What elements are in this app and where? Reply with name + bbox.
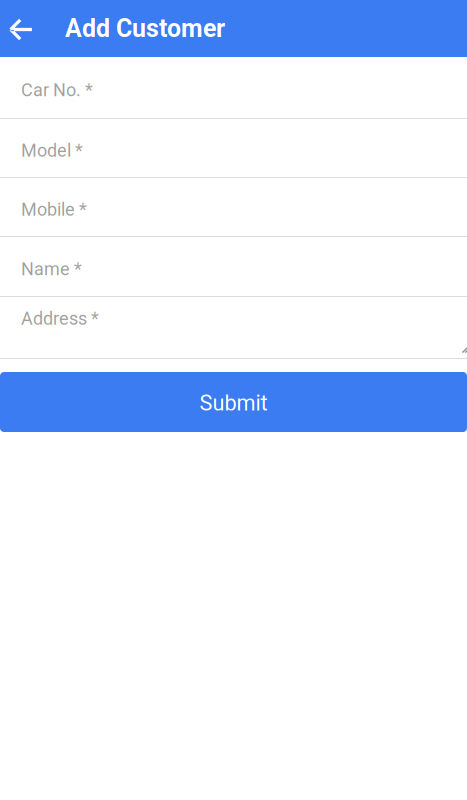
staticText: Submit	[199, 390, 267, 416]
button[interactable]: Back	[0, 0, 48, 57]
staticText: Address *	[21, 308, 99, 329]
staticText: Add Customer	[65, 14, 225, 43]
staticText: Mobile *	[21, 199, 87, 220]
button[interactable]: Car No. *	[0, 57, 467, 119]
button[interactable]: Submit	[0, 372, 467, 432]
staticText: Car No. *	[21, 79, 93, 101]
staticText: Name *	[21, 258, 82, 280]
button[interactable]: Address *	[0, 297, 467, 359]
button[interactable]: Mobile *	[0, 178, 467, 237]
button[interactable]: Name *	[0, 237, 467, 297]
staticText: Model *	[21, 140, 83, 161]
button[interactable]: Model *	[0, 119, 467, 178]
